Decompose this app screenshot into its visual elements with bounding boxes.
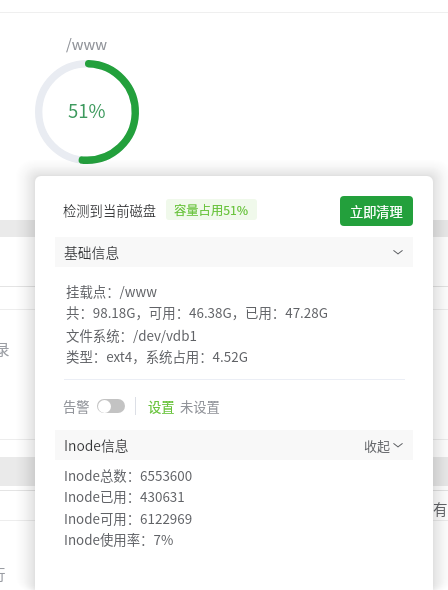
staticText: 51% [68,97,106,124]
staticText: 行 [0,563,6,584]
staticText: Inode已用：430631 [64,486,185,505]
staticText: Inode总数：6553600 [64,465,193,484]
staticText: 未设置 [180,397,220,416]
staticText: 文件系统：/dev/vdb1 [66,325,197,344]
staticText: 共：98.18G，可用：46.38G，已用：47.28G [66,302,328,321]
staticText: 录 [0,338,10,359]
staticText: 检测到当前磁盘 [63,201,157,220]
button[interactable]: Inode信息 [55,430,413,460]
staticText: 收起 [364,436,391,455]
staticText: 基础信息 [64,242,120,262]
button[interactable]: 告警开关 [97,399,125,413]
button[interactable]: 立即清理 [340,196,413,226]
button[interactable]: 设置 [148,397,175,416]
staticText: 容量占用51% [174,201,249,219]
staticText: /www [66,33,108,54]
staticText: 挂载点：/www [66,281,158,300]
staticText: 类型：ext4，系统占用：4.52G [66,346,248,365]
staticText: 有 [433,498,448,519]
button[interactable]: 基础信息 [55,237,413,267]
staticText: 告警 [63,397,90,416]
staticText: Inode信息 [64,435,129,455]
staticText: Inode可用：6122969 [64,508,193,527]
staticText: Inode使用率：7% [64,529,174,548]
staticText: 立即清理 [350,202,403,221]
